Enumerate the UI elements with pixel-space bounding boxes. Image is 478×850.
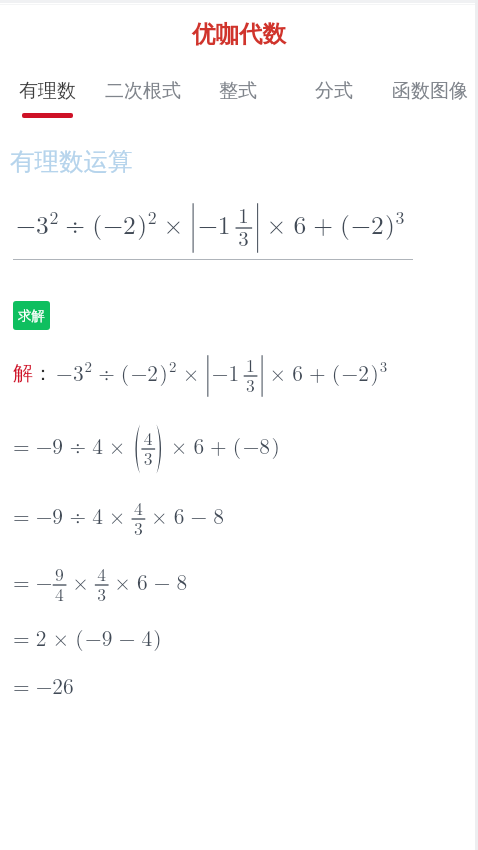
staticText: 函数图像 xyxy=(392,79,468,103)
button[interactable]: 分式 xyxy=(286,73,382,125)
button[interactable]: 二次根式 xyxy=(95,73,190,125)
staticText: 求解 xyxy=(18,307,45,324)
button[interactable]: 有理数 xyxy=(0,73,95,125)
staticText: 整式 xyxy=(219,79,257,103)
staticText: 分式 xyxy=(315,79,353,103)
staticText: 有理数 xyxy=(19,79,76,103)
staticText: 二次根式 xyxy=(105,79,181,103)
button[interactable]: 求解 xyxy=(13,301,50,330)
staticText: 有理数运算 xyxy=(10,146,133,177)
button[interactable]: 函数图像 xyxy=(382,73,478,125)
staticText: 解 xyxy=(13,361,33,386)
staticText: ： xyxy=(33,361,53,386)
staticText: 优咖代数 xyxy=(192,19,286,49)
button[interactable]: 整式 xyxy=(190,73,286,125)
